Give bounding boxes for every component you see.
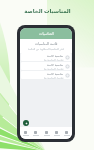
staticText: تفاصيل المناسبة هنا	[44, 67, 64, 70]
button[interactable]: Tab 4	[62, 131, 71, 136]
staticText: قائمة المناسبات	[35, 41, 58, 46]
button[interactable]: مناسبة خاصة	[21, 62, 71, 70]
staticText: مناسبة خاصة	[47, 72, 64, 76]
button[interactable]: Tab 2	[42, 131, 51, 136]
button[interactable]: Tab 0	[21, 131, 30, 136]
button[interactable]: المناسبات	[20, 28, 72, 39]
staticText: مناسبة خاصة	[47, 63, 64, 67]
staticText: مناسبة خاصة	[47, 54, 64, 58]
staticText: المناسبات الخاصة	[24, 7, 71, 14]
button[interactable]: Tab 3	[52, 131, 61, 136]
button[interactable]: Tab 1	[31, 131, 40, 136]
staticText: تفاصيل المناسبة هنا	[44, 76, 64, 79]
button[interactable]: Add	[23, 120, 29, 126]
staticText: المناسبات	[39, 32, 54, 36]
button[interactable]: مناسبة خاصة	[21, 53, 71, 61]
button[interactable]: مناسبة خاصة	[21, 71, 71, 79]
staticText: اختر المناسبة المطلوبة من القائمة	[28, 47, 65, 51]
staticText: تفاصيل المناسبة هنا	[44, 58, 64, 61]
